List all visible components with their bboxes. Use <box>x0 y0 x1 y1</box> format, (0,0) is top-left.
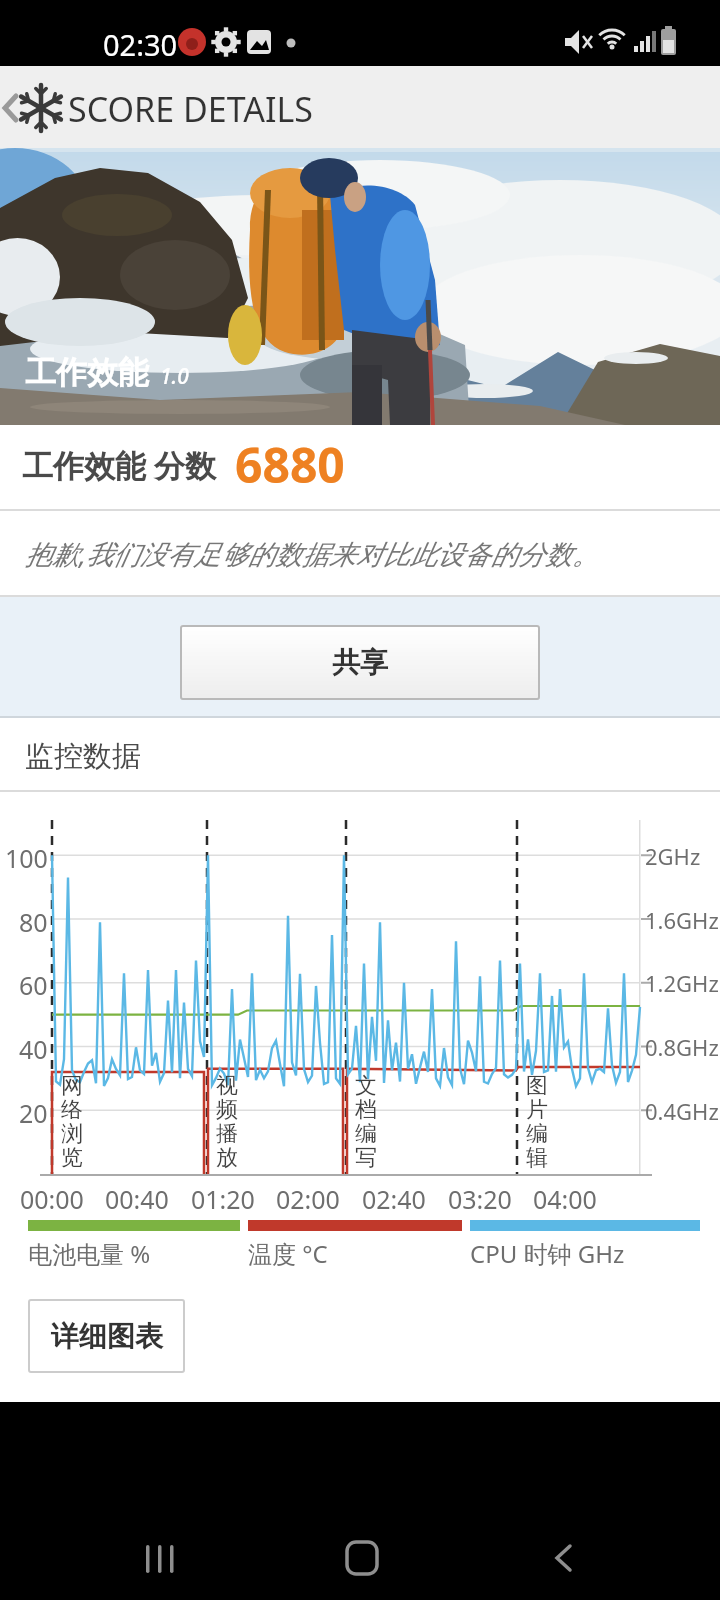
staticText: 02:40 <box>362 1182 426 1216</box>
staticText: 网 络 浏 览 <box>61 1072 83 1171</box>
staticText: 文 档 编 写 <box>355 1072 377 1171</box>
staticText: 04:00 <box>533 1182 597 1216</box>
staticText: 60 <box>19 968 48 1002</box>
staticText: 0.8GHz <box>645 1032 719 1062</box>
staticText: 80 <box>19 905 48 939</box>
button[interactable] <box>540 1530 604 1590</box>
button[interactable]: 详细图表 <box>28 1299 185 1373</box>
staticText: 电池电量 % <box>28 1237 151 1270</box>
staticText: 01:20 <box>191 1182 255 1216</box>
staticText: 00:00 <box>20 1182 84 1216</box>
staticText: 1.6GHz <box>645 905 719 935</box>
staticText: 100 <box>5 841 48 875</box>
staticText: 图 片 编 辑 <box>526 1072 548 1171</box>
staticText: 工作效能 分数 <box>22 444 217 486</box>
staticText: 00:40 <box>105 1182 169 1216</box>
staticText: CPU 时钟 GHz <box>470 1237 625 1270</box>
button[interactable] <box>330 1530 394 1590</box>
staticText: 共享 <box>332 645 388 680</box>
staticText: 1.2GHz <box>645 968 719 998</box>
button[interactable] <box>130 1530 194 1590</box>
staticText: 温度 °C <box>248 1237 328 1270</box>
staticText: 40 <box>19 1032 48 1066</box>
button[interactable] <box>0 66 66 148</box>
staticText: 1.0 <box>160 362 189 391</box>
staticText: 02:30 <box>103 25 178 64</box>
staticText: 详细图表 <box>51 1319 163 1354</box>
staticText: 20 <box>19 1096 48 1130</box>
button[interactable]: 共享 <box>180 625 540 700</box>
staticText: 0.4GHz <box>645 1096 719 1126</box>
staticText: 视 频 播 放 <box>216 1072 238 1171</box>
staticText: 6880 <box>235 432 345 497</box>
staticText: 2GHz <box>645 841 701 871</box>
staticText: 工作效能 <box>25 353 149 392</box>
staticText: SCORE DETAILS <box>68 86 313 132</box>
staticText: 抱歉,我们没有足够的数据来对比此设备的分数。 <box>25 535 599 572</box>
staticText: 03:20 <box>448 1182 512 1216</box>
staticText: 监控数据 <box>25 738 141 775</box>
staticText: 02:00 <box>276 1182 340 1216</box>
